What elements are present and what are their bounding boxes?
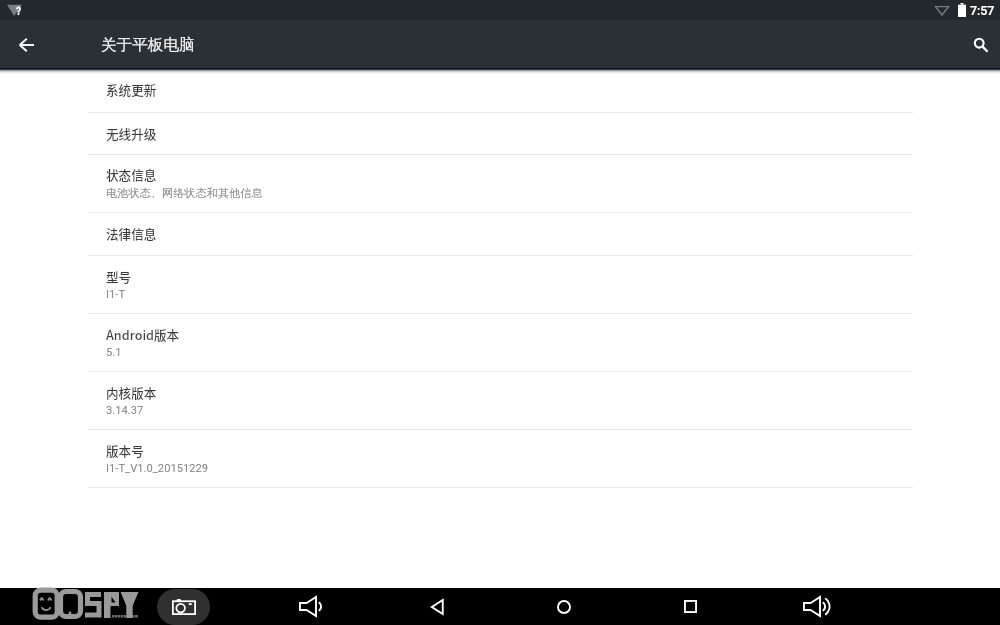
button[interactable]: Navigate up <box>0 20 52 68</box>
button[interactable]: Volume up <box>796 588 832 625</box>
button[interactable]: 状态信息 <box>88 155 913 213</box>
staticText: 法律信息 <box>106 224 157 242</box>
button[interactable]: Search <box>960 20 1000 68</box>
staticText: 系统更新 <box>106 80 157 98</box>
button[interactable]: 法律信息 <box>88 213 913 256</box>
staticText: 5.1 <box>106 346 122 359</box>
staticText: 3.14.37 <box>106 404 144 417</box>
button[interactable]: Back <box>419 588 455 625</box>
staticText: I1-T <box>106 288 126 301</box>
button[interactable]: 内核版本 <box>88 372 913 430</box>
staticText: 内核版本 <box>106 383 157 401</box>
button[interactable]: 无线升级 <box>88 113 913 155</box>
staticText: 7:57 <box>970 3 995 18</box>
button[interactable]: 版本号 <box>88 430 913 488</box>
button[interactable]: Recent apps <box>672 588 708 625</box>
button[interactable]: Android版本 <box>88 314 913 372</box>
staticText: I1-T_V1.0_20151229 <box>106 462 209 475</box>
button[interactable]: Home <box>546 588 582 625</box>
staticText: ? <box>16 6 21 18</box>
staticText: 版本号 <box>106 441 144 459</box>
staticText: 电池状态、网络状态和其他信息 <box>106 186 263 200</box>
staticText: 型号 <box>106 267 132 285</box>
staticText: 状态信息 <box>106 165 157 183</box>
button[interactable]: 系统更新 <box>88 68 913 113</box>
staticText: 无线升级 <box>106 124 157 142</box>
button[interactable]: 型号 <box>88 256 913 314</box>
button[interactable]: Volume down <box>292 588 328 625</box>
staticText: 关于平板电脑 <box>101 35 195 55</box>
staticText: Android版本 <box>106 325 180 343</box>
button[interactable]: Screenshot <box>157 589 210 625</box>
